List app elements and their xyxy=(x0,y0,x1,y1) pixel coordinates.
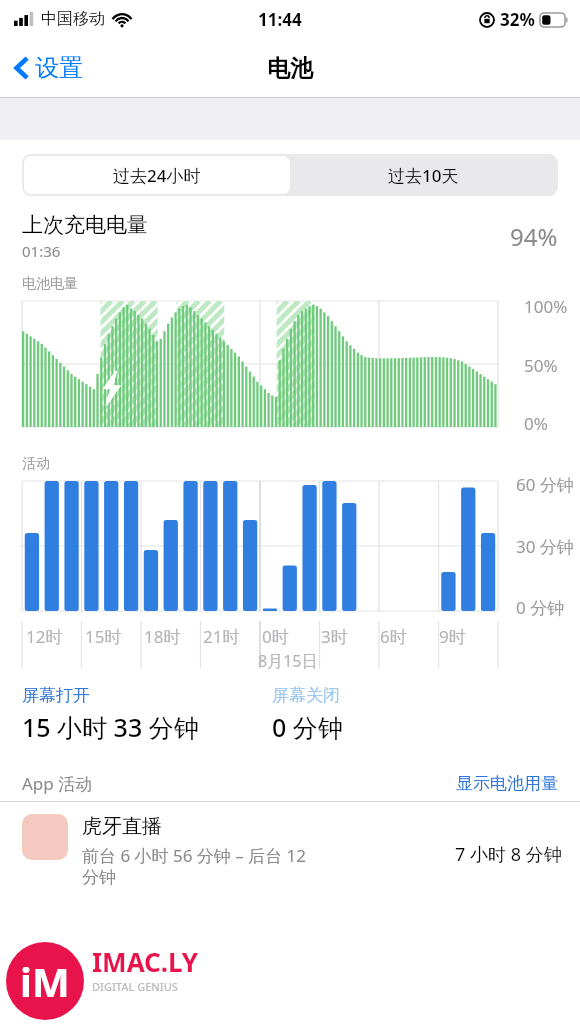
staticText: 虎牙直播 xyxy=(82,814,162,839)
staticText: 18时 xyxy=(144,625,181,648)
staticText: 6时 xyxy=(380,625,407,648)
staticText: 30 分钟 xyxy=(516,535,574,558)
button[interactable]: 虎牙直播 xyxy=(0,802,580,888)
staticText: 11:44 xyxy=(258,8,302,31)
staticText: 21时 xyxy=(203,625,240,648)
staticText: 9时 xyxy=(439,625,466,648)
staticText: 01:36 xyxy=(22,241,61,261)
staticText: 分钟 xyxy=(82,867,116,888)
staticText: 15时 xyxy=(85,625,122,648)
staticText: 电池 xyxy=(267,54,313,83)
staticText: 上次充电电量 xyxy=(22,212,148,238)
button[interactable]: 设置 xyxy=(10,47,87,89)
staticText: 前台 6 小时 56 分钟 – 后台 12 xyxy=(82,844,307,867)
button[interactable]: 上次充电电量 xyxy=(0,212,580,261)
staticText: 0时 xyxy=(262,625,289,648)
staticText: 7 小时 8 分钟 xyxy=(455,842,562,867)
staticText: App 活动 xyxy=(22,772,456,795)
button[interactable]: 显示电池用量 xyxy=(456,773,558,794)
staticText: 100% xyxy=(524,295,568,318)
staticText: 中国移动 xyxy=(41,9,105,29)
staticText: 活动 xyxy=(22,455,50,473)
staticText: 屏幕打开 xyxy=(22,685,90,706)
staticText: iM xyxy=(20,954,70,1008)
staticText: 过去10天 xyxy=(388,164,459,187)
staticText: DIGITAL GENIUS xyxy=(92,979,178,994)
staticText: 12时 xyxy=(26,625,63,648)
staticText: 0 分钟 xyxy=(516,596,565,619)
staticText: 0 分钟 xyxy=(272,710,343,744)
staticText: IMAC.LY xyxy=(92,944,199,979)
staticText: 32% xyxy=(500,8,535,31)
staticText: 0% xyxy=(524,412,548,435)
staticText: 94% xyxy=(510,220,558,253)
staticText: 设置 xyxy=(35,53,83,83)
staticText: 屏幕关闭 xyxy=(272,685,340,706)
staticText: 8月15日 xyxy=(258,650,318,672)
button[interactable]: 过去24小时 xyxy=(24,156,290,194)
staticText: 50% xyxy=(524,354,558,377)
staticText: 过去24小时 xyxy=(113,164,201,187)
staticText: 60 分钟 xyxy=(516,473,574,496)
staticText: 显示电池用量 xyxy=(456,773,558,794)
button[interactable]: 过去10天 xyxy=(290,156,556,194)
staticText: 电池电量 xyxy=(22,275,78,293)
staticText: 3时 xyxy=(321,625,348,648)
staticText: 15 小时 33 分钟 xyxy=(22,710,199,744)
